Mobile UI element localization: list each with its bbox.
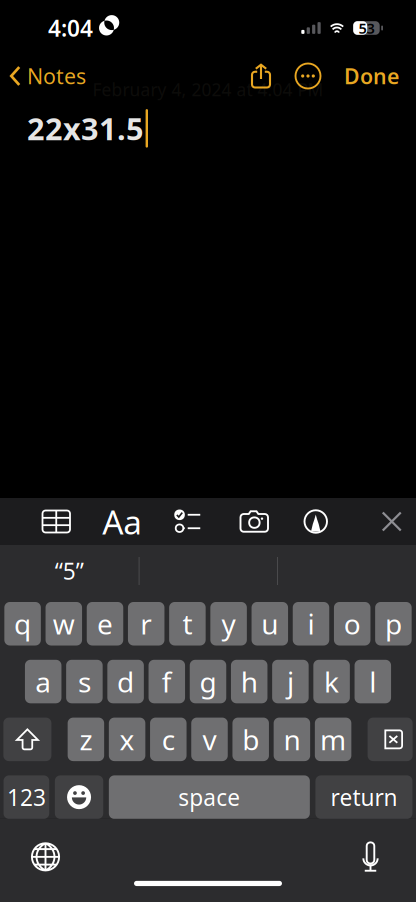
staticText: space	[178, 782, 240, 812]
staticText: c	[162, 721, 175, 758]
button[interactable]: w	[45, 602, 82, 645]
staticText: return	[330, 782, 397, 812]
staticText: z	[79, 721, 92, 758]
button[interactable]: i	[293, 602, 329, 645]
button[interactable]: q	[4, 602, 41, 645]
staticText: a	[35, 663, 51, 700]
button[interactable]: “5”	[0, 545, 139, 597]
button[interactable]: return	[315, 775, 412, 819]
staticText: February 4, 2024 at 4:04 PM	[92, 78, 323, 101]
button[interactable]: o	[334, 602, 370, 645]
button[interactable]: d	[107, 660, 144, 703]
button[interactable]: k	[313, 660, 350, 703]
button[interactable]: Done	[332, 52, 399, 100]
button[interactable]: n	[274, 718, 310, 761]
button[interactable]: v	[191, 718, 228, 761]
button[interactable]: p	[375, 602, 412, 645]
staticText: m	[320, 721, 346, 758]
staticText: n	[283, 721, 300, 758]
staticText: f	[162, 663, 172, 700]
button[interactable]: Next keyboard	[17, 833, 73, 881]
staticText: o	[344, 605, 361, 642]
staticText: Aa	[102, 499, 142, 544]
button[interactable]: m	[315, 718, 351, 761]
staticText: Done	[344, 62, 399, 90]
button[interactable]: Markup	[0, 498, 341, 545]
button[interactable]: r	[128, 602, 164, 645]
button[interactable]: Notes	[10, 52, 86, 100]
staticText: i	[307, 605, 314, 642]
button[interactable]: h	[231, 660, 267, 703]
staticText: d	[117, 663, 134, 700]
button[interactable]: e	[87, 602, 123, 645]
staticText: v	[202, 721, 216, 758]
button[interactable]: z	[68, 718, 104, 761]
button[interactable]: t	[169, 602, 206, 645]
button[interactable]: Camera	[0, 498, 279, 545]
button[interactable]: Dictation	[342, 833, 398, 881]
staticText: t	[182, 605, 192, 642]
button[interactable]: Checklist	[0, 498, 212, 545]
button[interactable]: 123	[3, 775, 49, 819]
staticText: 22x31.5	[27, 108, 144, 149]
button[interactable]: Hide keyboard	[0, 498, 416, 545]
button[interactable]: Emoji	[55, 775, 103, 819]
button[interactable]: f	[148, 660, 185, 703]
staticText: 123	[7, 782, 46, 812]
button[interactable]: Format	[0, 498, 147, 545]
button[interactable]: Shift	[3, 718, 51, 761]
button[interactable]: y	[210, 602, 247, 645]
button[interactable]: Table	[0, 498, 81, 545]
staticText: 4:04	[48, 13, 93, 43]
staticText: q	[14, 605, 31, 642]
staticText: Notes	[27, 62, 86, 90]
staticText: u	[261, 605, 278, 642]
staticText: k	[324, 663, 339, 700]
button[interactable]: c	[150, 718, 187, 761]
button[interactable]: u	[251, 602, 288, 645]
staticText: p	[385, 605, 402, 642]
button[interactable]: x	[109, 718, 145, 761]
staticText: r	[140, 605, 152, 642]
button[interactable]: b	[232, 718, 269, 761]
staticText: y	[222, 605, 236, 642]
button[interactable]: j	[272, 660, 309, 703]
button[interactable]: s	[66, 660, 103, 703]
staticText: h	[241, 663, 258, 700]
button[interactable]: l	[354, 660, 391, 703]
staticText: s	[78, 663, 91, 700]
staticText: w	[53, 605, 75, 642]
button[interactable]: Delete	[368, 718, 413, 761]
button[interactable]: More	[284, 56, 332, 96]
button[interactable]: g	[190, 660, 226, 703]
button[interactable]: Share	[238, 56, 284, 96]
staticText: e	[97, 605, 113, 642]
staticText: j	[287, 663, 294, 700]
staticText: b	[242, 721, 259, 758]
button[interactable]: space	[109, 775, 310, 819]
staticText: l	[369, 663, 376, 700]
staticText: “5”	[55, 556, 84, 586]
staticText: x	[120, 721, 135, 758]
staticText: g	[199, 663, 216, 700]
staticText: 53	[358, 18, 374, 38]
button[interactable]: a	[25, 660, 61, 703]
